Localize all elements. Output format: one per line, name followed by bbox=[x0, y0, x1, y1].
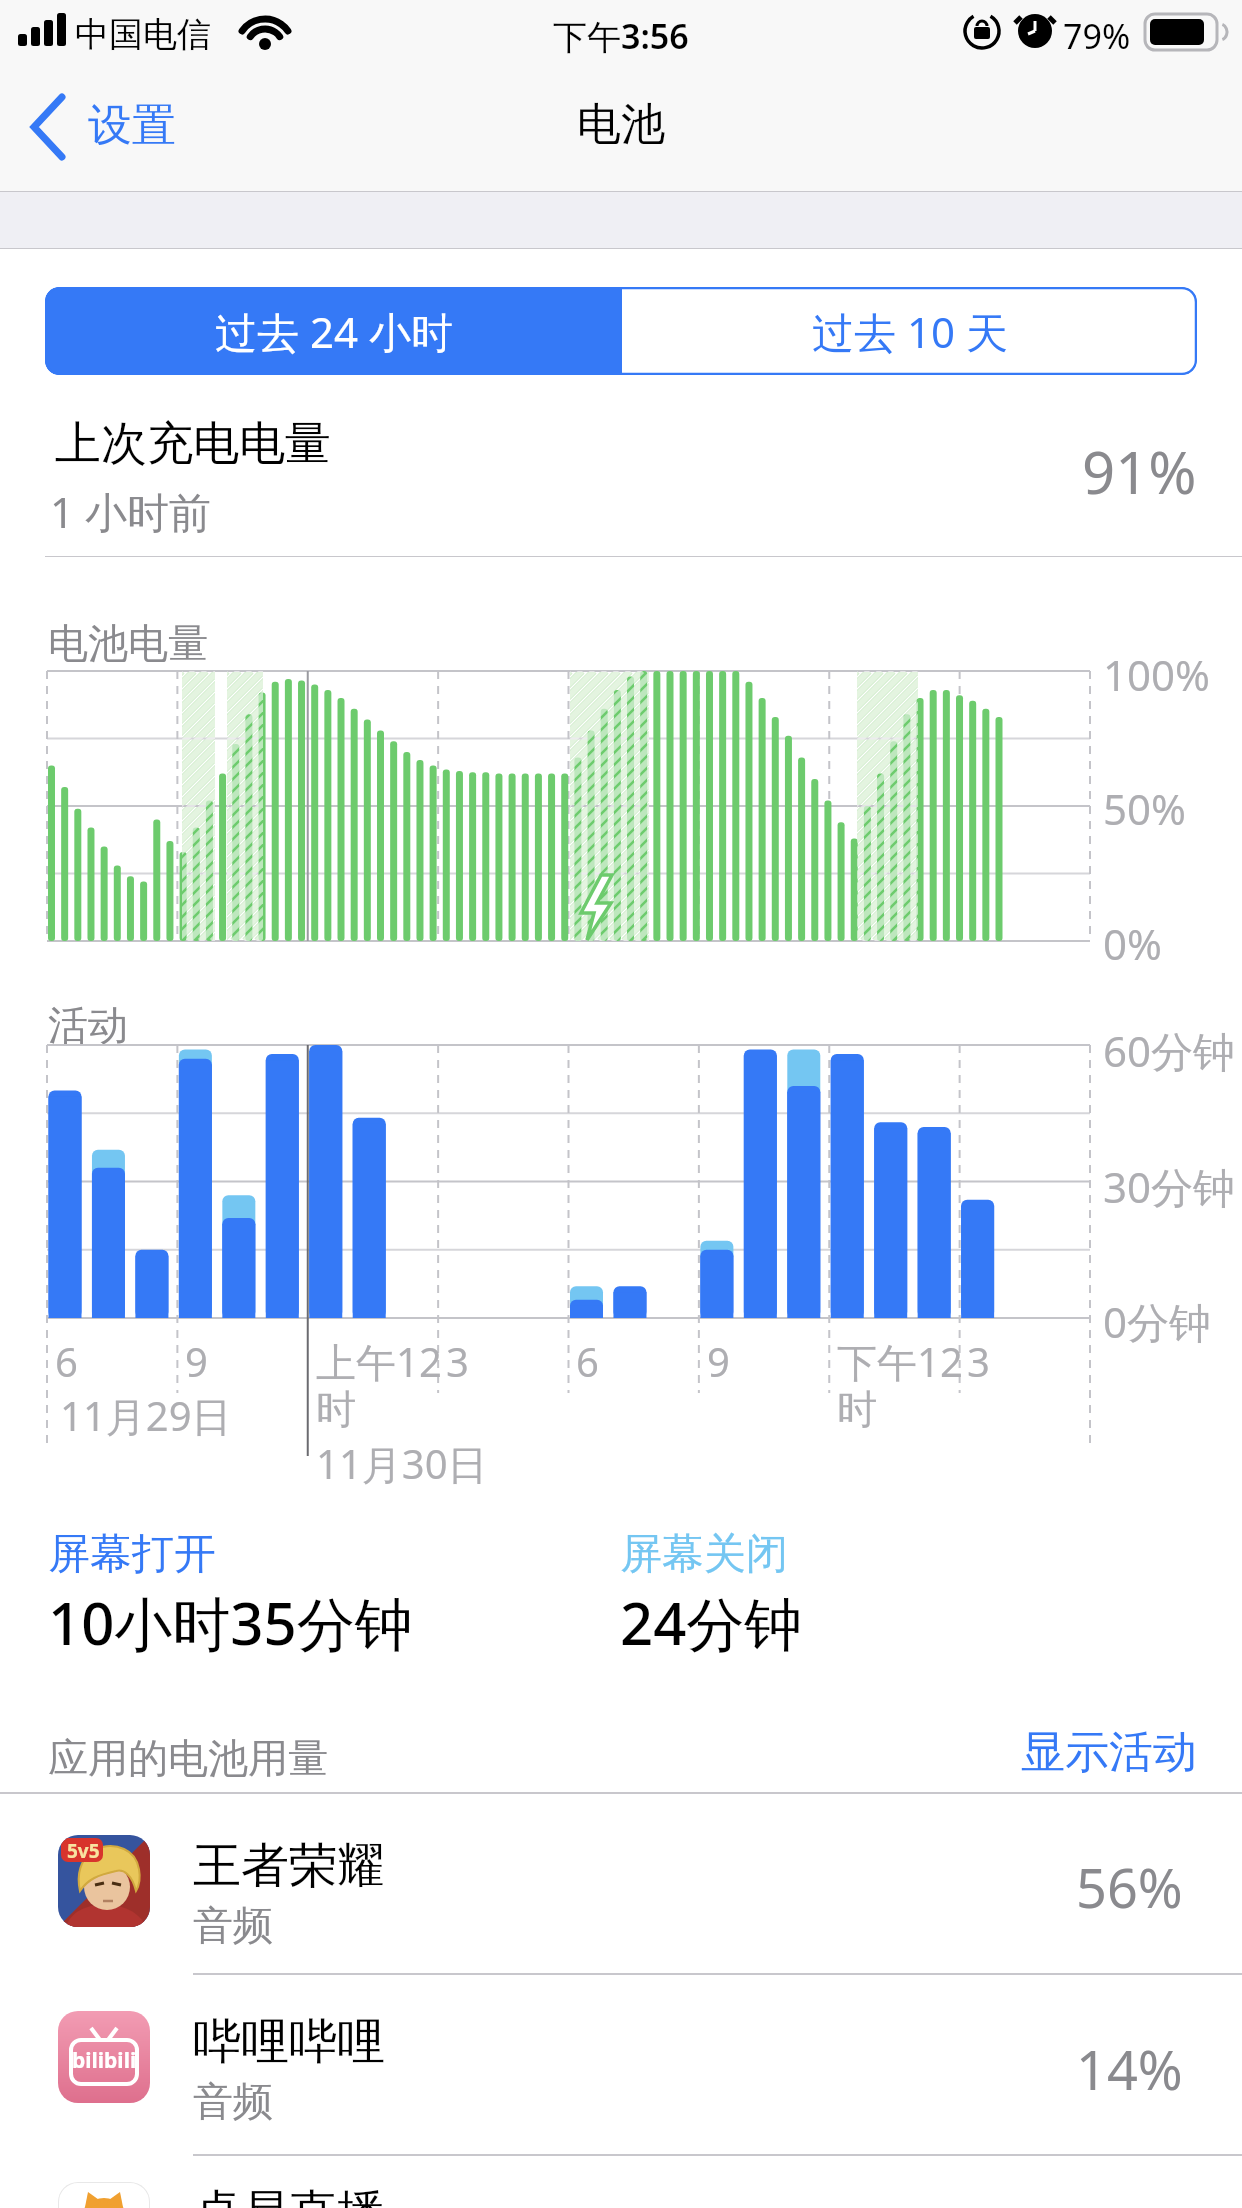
staticText: 9 bbox=[185, 1334, 208, 1388]
staticText: 9 bbox=[707, 1334, 730, 1388]
staticText: 3 bbox=[967, 1334, 990, 1388]
button[interactable]: 过去 24 小时 bbox=[45, 287, 622, 375]
button[interactable]: 过去 10 天 bbox=[622, 287, 1197, 375]
staticText: 卓易直播 bbox=[193, 2183, 385, 2208]
staticText: 屏幕打开 bbox=[48, 1528, 216, 1581]
staticText: 音频 bbox=[193, 2076, 273, 2126]
staticText: 79% bbox=[1063, 13, 1131, 59]
button[interactable]: 5v5 bbox=[0, 1792, 1242, 1975]
staticText: bilibili bbox=[72, 2046, 137, 2075]
staticText: 100% bbox=[1103, 646, 1210, 703]
staticText: 60分钟 bbox=[1103, 1022, 1236, 1079]
staticText: 下午3:56 bbox=[553, 13, 689, 59]
button[interactable]: bilibili bbox=[0, 1974, 1242, 2157]
staticText: 中国电信 bbox=[75, 13, 211, 56]
staticText: 0% bbox=[1103, 915, 1162, 972]
staticText: 0分钟 bbox=[1103, 1293, 1212, 1350]
staticText: 上午12 bbox=[316, 1334, 442, 1389]
staticText: 24分钟 bbox=[620, 1583, 803, 1662]
staticText: 电池 bbox=[577, 97, 665, 152]
staticText: 屏幕关闭 bbox=[620, 1528, 788, 1581]
staticText: 50% bbox=[1103, 780, 1186, 837]
staticText: 10小时35分钟 bbox=[48, 1583, 413, 1662]
staticText: 上次充电电量 bbox=[55, 415, 331, 473]
staticText: 王者荣耀 bbox=[193, 1836, 385, 1896]
staticText: 6 bbox=[576, 1334, 599, 1388]
button[interactable]: 显示活动 bbox=[940, 1725, 1197, 1780]
staticText: 1 小时前 bbox=[50, 483, 211, 540]
staticText: 过去 10 天 bbox=[812, 303, 1008, 360]
staticText: 应用的电池用量 bbox=[48, 1733, 328, 1783]
staticText: 3 bbox=[446, 1334, 469, 1388]
staticText: 11月30日 bbox=[316, 1436, 488, 1491]
staticText: 电池电量 bbox=[48, 618, 208, 668]
button[interactable]: 卓易直播 bbox=[0, 2156, 1242, 2208]
button[interactable]: 设置 bbox=[20, 85, 250, 170]
staticText: 14% bbox=[1076, 2032, 1183, 2106]
staticText: 设置 bbox=[88, 98, 176, 153]
staticText: 11月29日 bbox=[60, 1388, 232, 1443]
staticText: 56% bbox=[1076, 1850, 1183, 1924]
staticText: 时 bbox=[837, 1384, 877, 1434]
staticText: 91% bbox=[1082, 432, 1197, 511]
staticText: 活动 bbox=[48, 1000, 128, 1050]
staticText: 5v5 bbox=[67, 1838, 100, 1864]
staticText: 哔哩哔哩 bbox=[193, 2012, 385, 2072]
staticText: 下午12 bbox=[837, 1334, 963, 1389]
staticText: 时 bbox=[316, 1384, 356, 1434]
staticText: 过去 24 小时 bbox=[215, 303, 453, 360]
staticText: 音频 bbox=[193, 1900, 273, 1950]
staticText: 30分钟 bbox=[1103, 1158, 1236, 1215]
staticText: 显示活动 bbox=[1021, 1725, 1197, 1780]
staticText: 6 bbox=[55, 1334, 78, 1388]
